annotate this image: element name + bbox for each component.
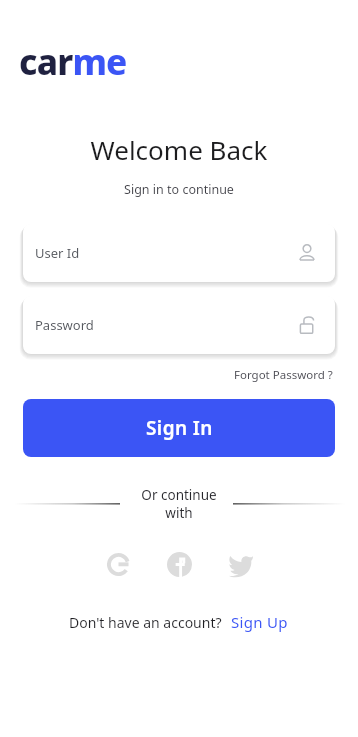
button[interactable]: Sign Up (229, 610, 290, 634)
button[interactable]: Password (23, 296, 335, 354)
staticText: Don't have an account? (69, 613, 222, 632)
staticText: User Id (35, 244, 296, 262)
button[interactable]: Sign in with Facebook (159, 544, 199, 584)
staticText: Sign in to continue (0, 181, 358, 198)
button[interactable]: Sign in with Google (98, 544, 138, 584)
staticText: Forgot Password ? (234, 367, 333, 383)
button[interactable]: Sign In (23, 399, 335, 457)
button[interactable]: carme (19, 38, 127, 86)
staticText: Password (35, 316, 296, 334)
staticText: Or continue with (129, 486, 229, 522)
staticText: Sign Up (231, 612, 288, 632)
staticText: carme (19, 38, 127, 86)
button[interactable]: Sign in with Twitter (220, 544, 260, 584)
staticText: Sign In (146, 415, 213, 441)
staticText: Welcome Back (0, 132, 358, 167)
button[interactable]: User Id (23, 224, 335, 282)
button[interactable]: Forgot Password ? (232, 364, 335, 386)
